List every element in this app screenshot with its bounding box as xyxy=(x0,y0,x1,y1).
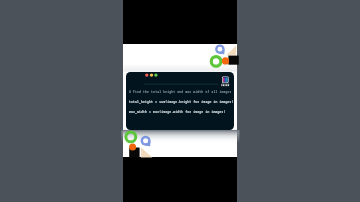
staticText: total_height = sum(image.height for imag… xyxy=(129,100,234,104)
staticText: max_width = max(image.width for image in… xyxy=(129,110,226,114)
staticText: # Find the total height and max width of… xyxy=(129,90,232,94)
button[interactable]: Channel logo xyxy=(126,72,234,130)
button[interactable]: Channel logo xyxy=(221,76,231,87)
button[interactable]: Channel logo xyxy=(123,0,237,202)
